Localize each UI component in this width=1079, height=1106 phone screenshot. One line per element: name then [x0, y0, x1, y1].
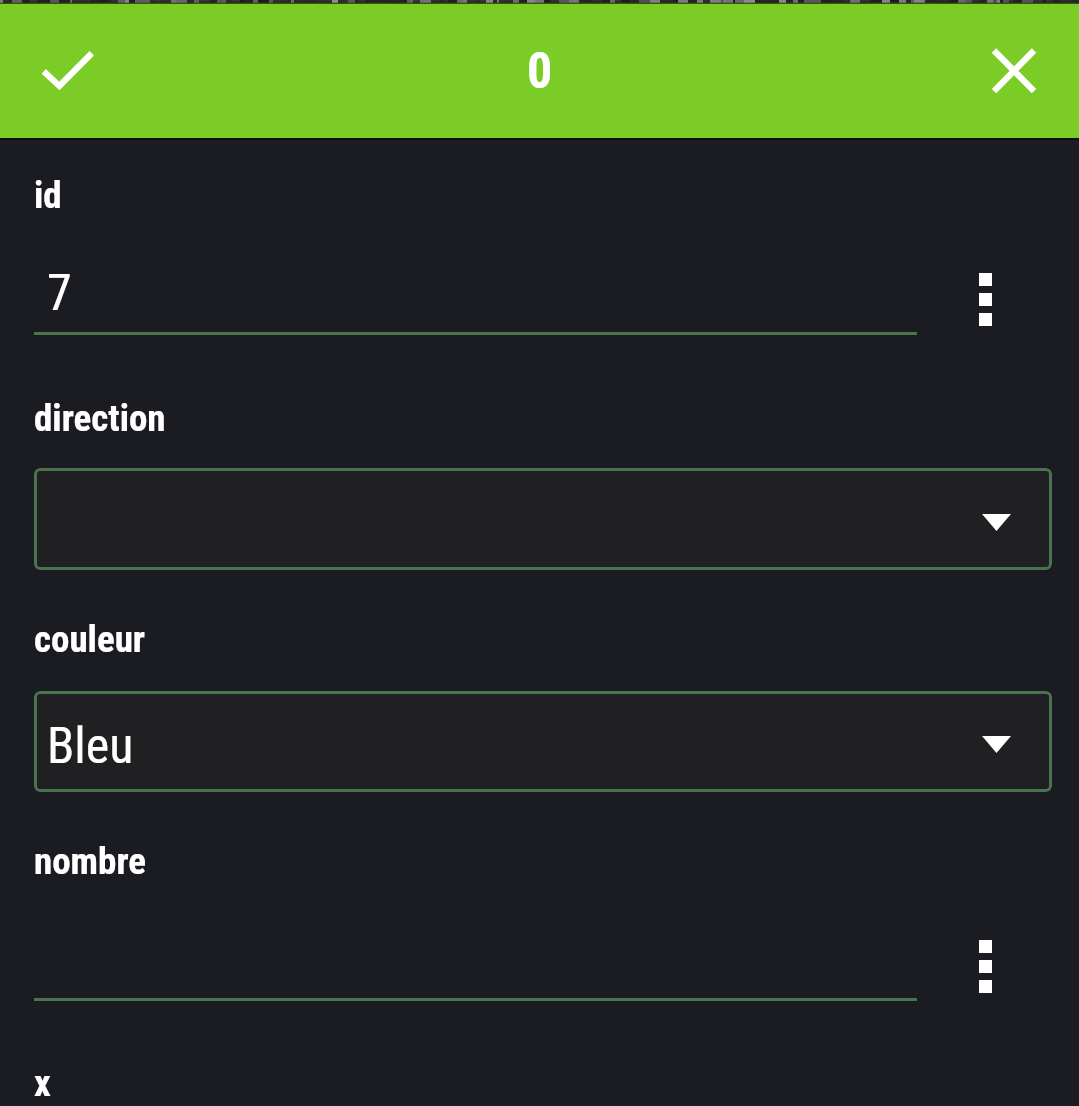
- button[interactable]: 7: [34, 255, 917, 335]
- button[interactable]: Bleu: [34, 691, 1052, 792]
- staticText: direction: [34, 397, 166, 440]
- staticText: couleur: [34, 618, 146, 661]
- button[interactable]: [34, 468, 1052, 570]
- button[interactable]: [34, 921, 917, 1001]
- button[interactable]: More options: [957, 938, 1013, 994]
- staticText: Bleu: [47, 717, 134, 776]
- staticText: x: [34, 1062, 51, 1105]
- staticText: id: [34, 174, 62, 217]
- staticText: 0: [527, 42, 553, 101]
- button[interactable]: Save: [0, 4, 134, 138]
- staticText: 7: [47, 264, 72, 323]
- staticText: nombre: [34, 840, 146, 883]
- button[interactable]: Close: [945, 4, 1079, 138]
- button[interactable]: More options: [957, 271, 1013, 327]
